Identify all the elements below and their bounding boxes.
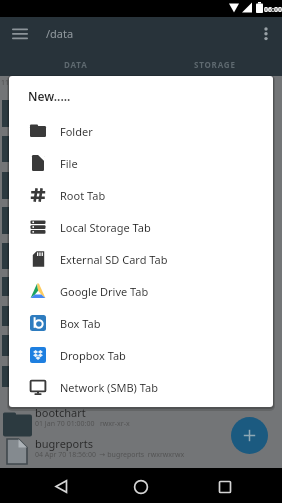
staticText: bugreports bbox=[35, 436, 94, 451]
staticText: 11 bbox=[1, 78, 10, 88]
staticText: STORAGE bbox=[194, 59, 236, 70]
button[interactable] bbox=[219, 481, 231, 493]
staticText: New..... bbox=[28, 88, 71, 104]
staticText: Root Tab bbox=[60, 188, 106, 203]
staticText: bootchart bbox=[35, 405, 86, 420]
staticText: File bbox=[60, 156, 78, 171]
button[interactable]: Network (SMB) Tab bbox=[9, 371, 273, 403]
staticText: Folder bbox=[60, 124, 93, 139]
staticText: Google Drive Tab bbox=[60, 284, 149, 299]
button[interactable]: Dropbox Tab bbox=[9, 339, 273, 371]
button[interactable]: Root Tab bbox=[9, 179, 273, 211]
button[interactable]: DATA bbox=[0, 52, 152, 76]
button[interactable] bbox=[231, 417, 268, 454]
button[interactable]: Google Drive Tab bbox=[9, 275, 273, 307]
button[interactable] bbox=[55, 480, 68, 493]
button[interactable]: Folder bbox=[9, 115, 273, 147]
button[interactable] bbox=[263, 27, 269, 41]
button[interactable]: Local Storage Tab bbox=[9, 211, 273, 243]
button[interactable] bbox=[134, 480, 148, 494]
staticText: DATA bbox=[64, 59, 88, 70]
staticText: External SD Card Tab bbox=[60, 252, 168, 267]
staticText: 01 Jan 70 01:00:00 rwxr-xr-x bbox=[35, 419, 130, 429]
button[interactable]: Box Tab bbox=[9, 307, 273, 339]
staticText: Network (SMB) Tab bbox=[60, 380, 158, 395]
staticText: /data bbox=[46, 26, 74, 41]
button[interactable]: External SD Card Tab bbox=[9, 243, 273, 275]
staticText: Box Tab bbox=[60, 316, 101, 331]
staticText: 04 Apr 70 18:56:00 → bugreports rwxrwxrw… bbox=[35, 450, 185, 460]
staticText: Local Storage Tab bbox=[60, 220, 151, 235]
staticText: 06:00 bbox=[264, 5, 282, 15]
button[interactable]: STORAGE bbox=[148, 52, 282, 76]
button[interactable]: File bbox=[9, 147, 273, 179]
staticText: Dropbox Tab bbox=[60, 348, 126, 363]
button[interactable] bbox=[12, 28, 28, 40]
